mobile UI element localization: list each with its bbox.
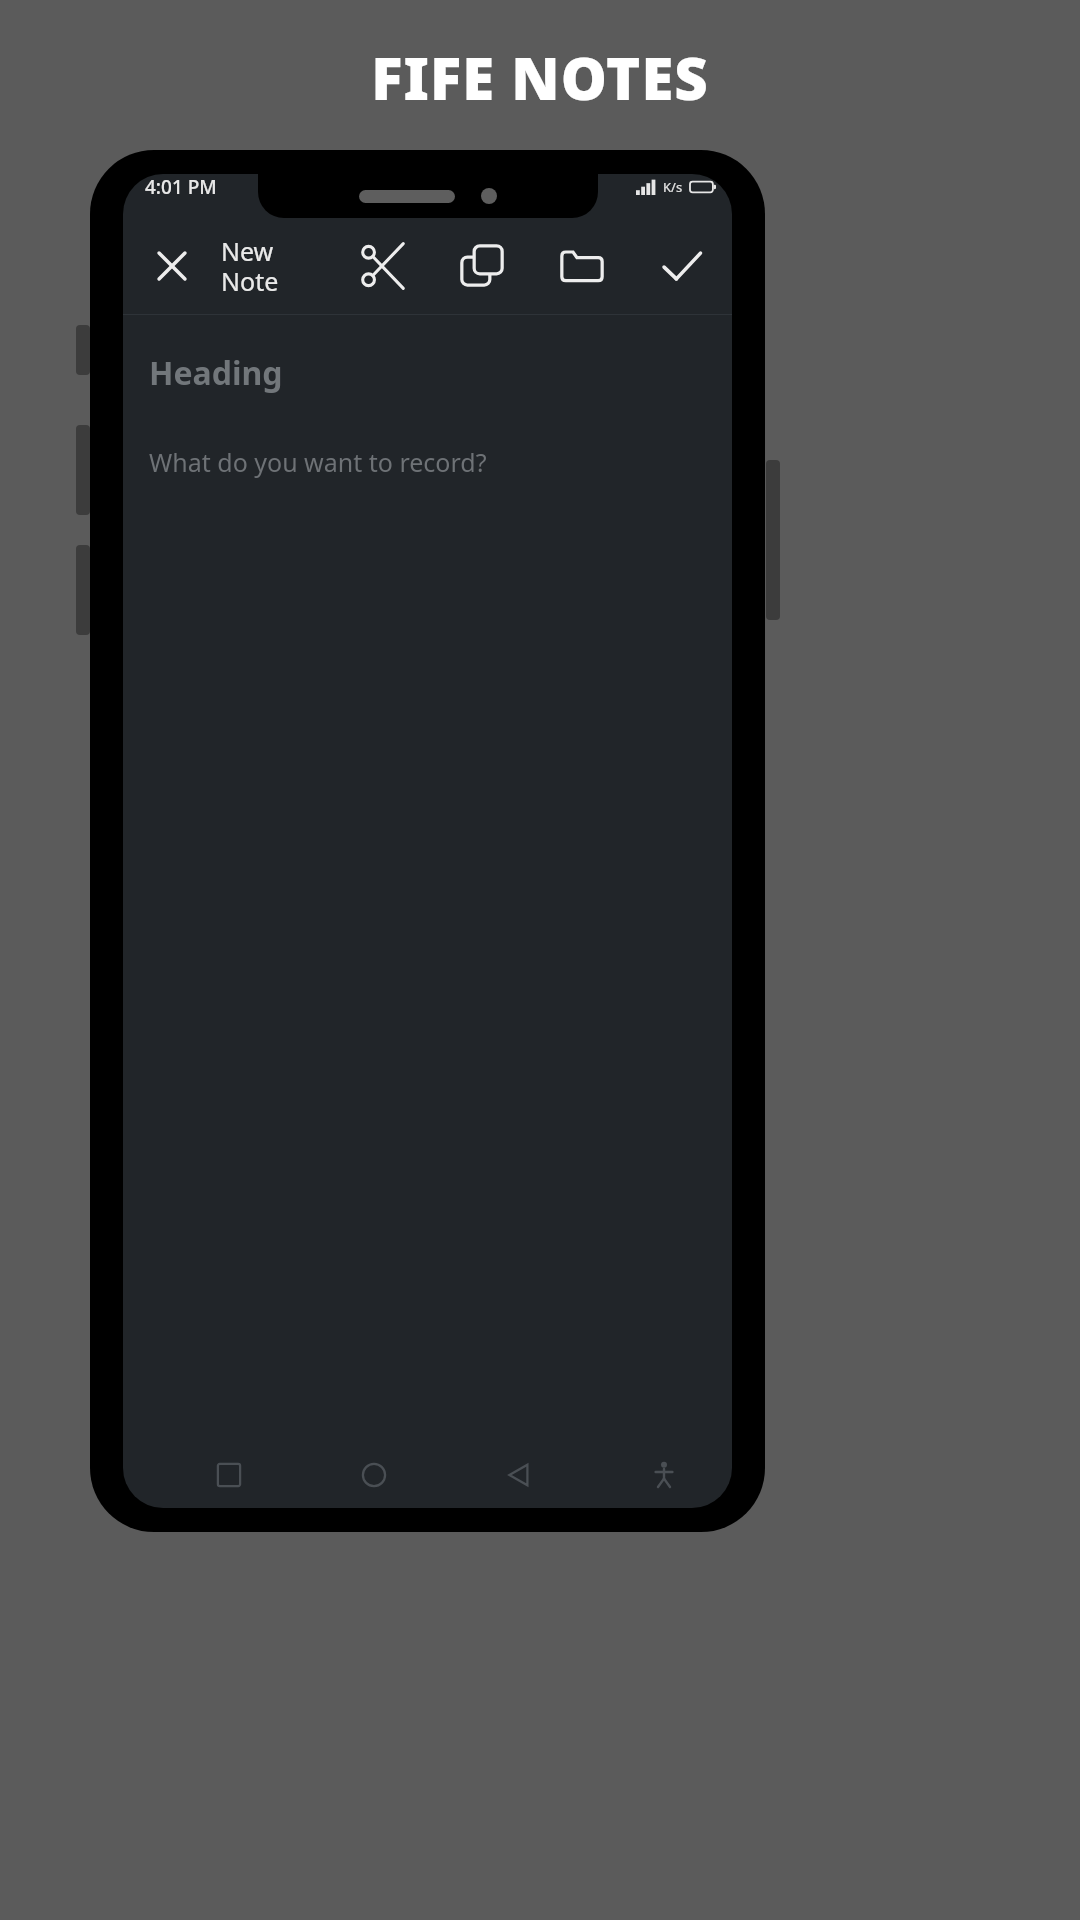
staticText: What do you want to record? [149, 445, 487, 479]
button[interactable]: Back [490, 1446, 548, 1504]
button[interactable]: Close [137, 231, 207, 301]
button[interactable]: Move to folder [546, 230, 618, 302]
button[interactable]: Cut [346, 230, 418, 302]
button[interactable]: Recents [200, 1446, 258, 1504]
staticText: K/s [663, 178, 683, 196]
staticText: FIFE NOTES [371, 38, 709, 117]
staticText: New Note [221, 234, 279, 298]
button[interactable]: Save [646, 230, 718, 302]
button[interactable]: Accessibility [635, 1446, 693, 1504]
staticText: Heading [149, 351, 283, 395]
button[interactable]: Home [345, 1446, 403, 1504]
button[interactable]: Heading [123, 315, 732, 1442]
staticText: 4:01 PM [145, 174, 217, 200]
button[interactable]: Copy [446, 230, 518, 302]
button[interactable]: New Note [217, 230, 307, 302]
